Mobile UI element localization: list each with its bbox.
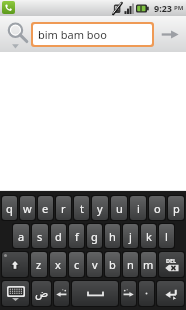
button[interactable]: k [141, 224, 156, 248]
button[interactable]: Next input method [121, 281, 136, 306]
button[interactable]: m [141, 252, 156, 277]
staticText: w [23, 201, 32, 216]
staticText: bim bam boo [38, 27, 107, 42]
staticText: q [6, 201, 13, 216]
staticText: n [127, 257, 134, 272]
button[interactable]: Select search source [3, 17, 31, 51]
staticText: DEL [166, 257, 177, 264]
button[interactable]: b [105, 252, 120, 277]
staticText: o [154, 201, 161, 216]
button[interactable]: a [13, 224, 29, 248]
button[interactable]: e [38, 196, 53, 220]
button[interactable]: i [130, 196, 146, 220]
staticText: z [36, 257, 42, 272]
staticText: h [109, 229, 116, 244]
button[interactable]: Previous input method [54, 281, 69, 306]
button[interactable]: Period [139, 281, 154, 306]
button[interactable]: r [56, 196, 71, 220]
button[interactable]: Hide keyboard [2, 281, 29, 306]
staticText: r [61, 201, 66, 216]
button[interactable]: h [105, 224, 120, 248]
staticText: 9:23 [154, 2, 172, 14]
staticText: j [129, 229, 132, 244]
button[interactable]: Delete [159, 252, 184, 277]
button[interactable]: j [123, 224, 138, 248]
staticText: k [146, 229, 152, 244]
staticText: t [80, 201, 84, 216]
button[interactable]: z [31, 252, 47, 277]
staticText: a [18, 229, 25, 244]
button[interactable]: w [20, 196, 35, 220]
staticText: ض [35, 287, 49, 300]
staticText: y [97, 201, 103, 216]
button[interactable]: f [69, 224, 84, 248]
button[interactable]: Search [157, 22, 183, 47]
button[interactable]: u [111, 196, 127, 220]
staticText: PM [174, 4, 184, 12]
staticText: e [42, 201, 49, 216]
staticText: s [37, 229, 43, 244]
staticText: x [55, 257, 61, 272]
button[interactable]: x [50, 252, 66, 277]
button[interactable]: n [123, 252, 138, 277]
staticText: f [75, 229, 79, 244]
button[interactable]: y [92, 196, 108, 220]
staticText: p [173, 201, 180, 216]
staticText: g [91, 229, 98, 244]
button[interactable]: g [87, 224, 102, 248]
staticText: u [116, 201, 123, 216]
button[interactable]: d [51, 224, 66, 248]
staticText: c [74, 257, 80, 272]
button[interactable]: c [69, 252, 84, 277]
button[interactable]: bim bam boo [33, 24, 152, 45]
button[interactable]: Space [72, 281, 118, 306]
button[interactable]: Shift [2, 252, 28, 277]
staticText: b [109, 257, 116, 272]
button[interactable]: s [32, 224, 48, 248]
staticText: i [137, 201, 140, 216]
button[interactable]: q [2, 196, 17, 220]
staticText: l [165, 229, 168, 244]
staticText: m [143, 257, 154, 272]
button[interactable]: t [74, 196, 89, 220]
staticText: v [92, 257, 98, 272]
button[interactable]: o [149, 196, 165, 220]
button[interactable]: v [87, 252, 102, 277]
button[interactable]: l [159, 224, 174, 248]
button[interactable]: Enter [157, 281, 184, 306]
button[interactable]: Arabic layout [32, 281, 51, 306]
button[interactable]: p [168, 196, 184, 220]
staticText: d [55, 229, 62, 244]
